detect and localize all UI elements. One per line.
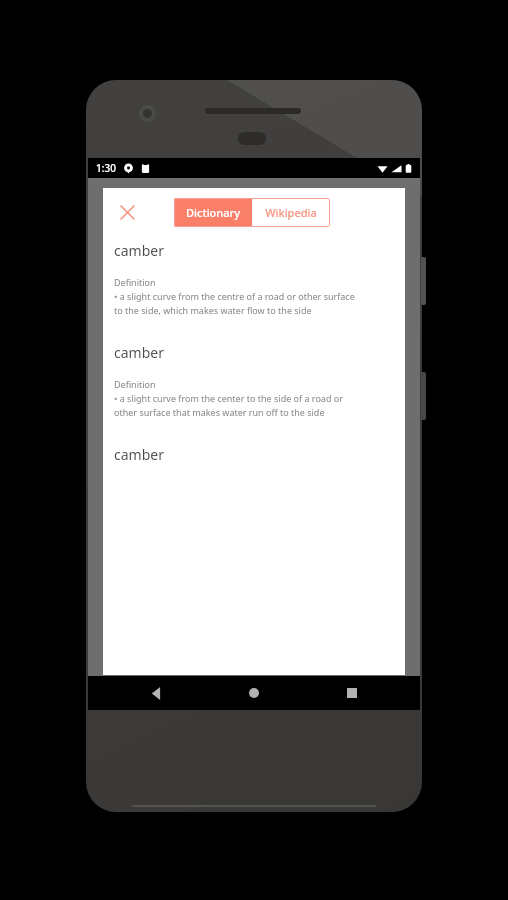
button[interactable]: camber	[114, 343, 164, 362]
button[interactable]: Close	[109, 194, 145, 230]
button[interactable]: camber	[114, 241, 164, 260]
button[interactable]: Recent apps	[322, 676, 382, 710]
staticText: Definition	[114, 378, 156, 390]
staticText: Dictionary	[186, 205, 240, 220]
button[interactable]: Wikipedia	[252, 198, 330, 227]
staticText: Definition	[114, 276, 156, 288]
button[interactable]: Home	[224, 676, 284, 710]
button[interactable]: Dictionary	[174, 198, 252, 227]
button[interactable]: Back	[126, 676, 186, 710]
button[interactable]: camber	[114, 445, 164, 464]
staticText: other surface that makes water run off t…	[114, 406, 325, 418]
staticText: to the side, which makes water flow to t…	[114, 304, 312, 316]
staticText: • a slight curve from the centre of a ro…	[114, 290, 355, 302]
staticText: Wikipedia	[265, 205, 317, 220]
staticText: 1:30	[96, 161, 116, 175]
staticText: • a slight curve from the center to the …	[114, 392, 343, 404]
